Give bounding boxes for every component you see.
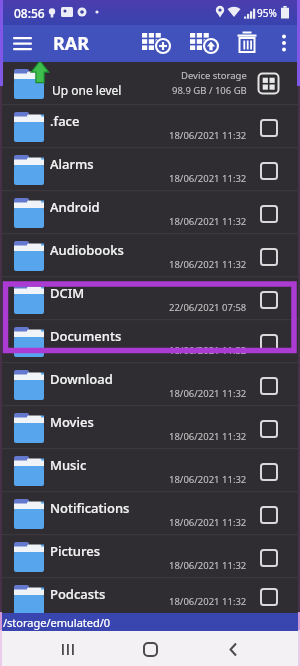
staticText: 18/06/2021 11:32 xyxy=(169,595,247,608)
button[interactable]: Podcasts xyxy=(0,577,300,613)
button[interactable] xyxy=(260,334,278,352)
staticText: .face xyxy=(50,112,80,130)
button[interactable] xyxy=(234,29,260,55)
staticText: Device storage xyxy=(181,69,247,82)
button[interactable]: DCIM xyxy=(0,276,300,319)
button[interactable]: Notifications xyxy=(0,491,300,534)
button[interactable] xyxy=(260,248,278,266)
button[interactable]: Movies xyxy=(0,405,300,448)
button[interactable] xyxy=(260,463,278,481)
staticText: /storage/emulated/0 xyxy=(3,615,111,630)
staticText: Notifications xyxy=(50,499,130,517)
button[interactable] xyxy=(53,634,83,664)
staticText: Android xyxy=(50,198,100,216)
staticText: 18/06/2021 11:32 xyxy=(169,258,247,271)
button[interactable]: Music xyxy=(0,448,300,491)
staticText: 98.9 GB / 106 GB xyxy=(172,84,247,97)
staticText: 18/06/2021 11:32 xyxy=(169,344,247,357)
button[interactable] xyxy=(260,377,278,395)
button[interactable] xyxy=(274,29,300,55)
staticText: Documents xyxy=(50,327,122,345)
staticText: Up one level xyxy=(52,82,122,98)
staticText: 18/06/2021 11:32 xyxy=(169,559,247,572)
staticText: Pictures xyxy=(50,542,100,560)
button[interactable]: /storage/emulated/0 xyxy=(0,613,300,631)
button[interactable]: Android xyxy=(0,190,300,233)
staticText: 22/06/2021 07:58 xyxy=(169,301,247,314)
staticText: DCIM xyxy=(50,284,85,302)
button[interactable] xyxy=(260,291,278,309)
button[interactable] xyxy=(257,72,280,95)
staticText: Music xyxy=(50,456,87,474)
staticText: Podcasts xyxy=(50,585,106,603)
staticText: Audiobooks xyxy=(50,241,124,259)
button[interactable]: Documents xyxy=(0,319,300,362)
button[interactable]: Alarms xyxy=(0,147,300,190)
button[interactable]: Audiobooks xyxy=(0,233,300,276)
button[interactable] xyxy=(140,29,170,59)
button[interactable] xyxy=(260,506,278,524)
button[interactable] xyxy=(218,634,248,664)
button[interactable] xyxy=(260,119,278,137)
button[interactable] xyxy=(260,162,278,180)
staticText: Movies xyxy=(50,413,94,431)
staticText: Alarms xyxy=(50,155,94,173)
staticText: 08:56 xyxy=(14,5,45,21)
staticText: 95% xyxy=(257,6,277,20)
button[interactable]: Download xyxy=(0,362,300,405)
button[interactable] xyxy=(260,549,278,567)
staticText: 18/06/2021 11:32 xyxy=(169,172,247,185)
staticText: 18/06/2021 11:32 xyxy=(169,430,247,443)
button[interactable]: Up one level xyxy=(0,62,300,104)
button[interactable] xyxy=(260,588,278,606)
staticText: 18/06/2021 11:32 xyxy=(169,129,247,142)
button[interactable] xyxy=(10,31,36,57)
staticText: 18/06/2021 11:32 xyxy=(169,215,247,228)
button[interactable] xyxy=(135,634,165,664)
button[interactable]: Pictures xyxy=(0,534,300,577)
staticText: 18/06/2021 11:32 xyxy=(169,387,247,400)
button[interactable] xyxy=(188,29,218,59)
staticText: RAR xyxy=(53,31,90,56)
button[interactable] xyxy=(260,420,278,438)
staticText: Download xyxy=(50,370,113,388)
staticText: 18/06/2021 11:32 xyxy=(169,473,247,486)
button[interactable] xyxy=(260,205,278,223)
button[interactable]: .face xyxy=(0,104,300,147)
staticText: 18/06/2021 11:32 xyxy=(169,516,247,529)
